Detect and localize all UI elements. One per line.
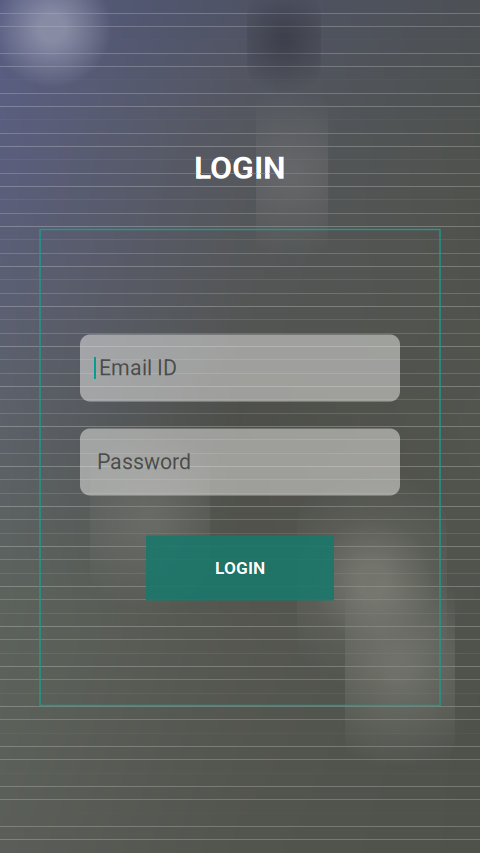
staticText: Email ID bbox=[99, 355, 177, 380]
staticText: LOGIN bbox=[215, 558, 265, 578]
staticText: LOGIN bbox=[194, 149, 286, 186]
staticText: Password bbox=[97, 449, 191, 474]
button[interactable]: LOGIN bbox=[146, 535, 334, 600]
button[interactable]: Email ID bbox=[80, 334, 400, 401]
button[interactable]: Password bbox=[80, 428, 400, 495]
